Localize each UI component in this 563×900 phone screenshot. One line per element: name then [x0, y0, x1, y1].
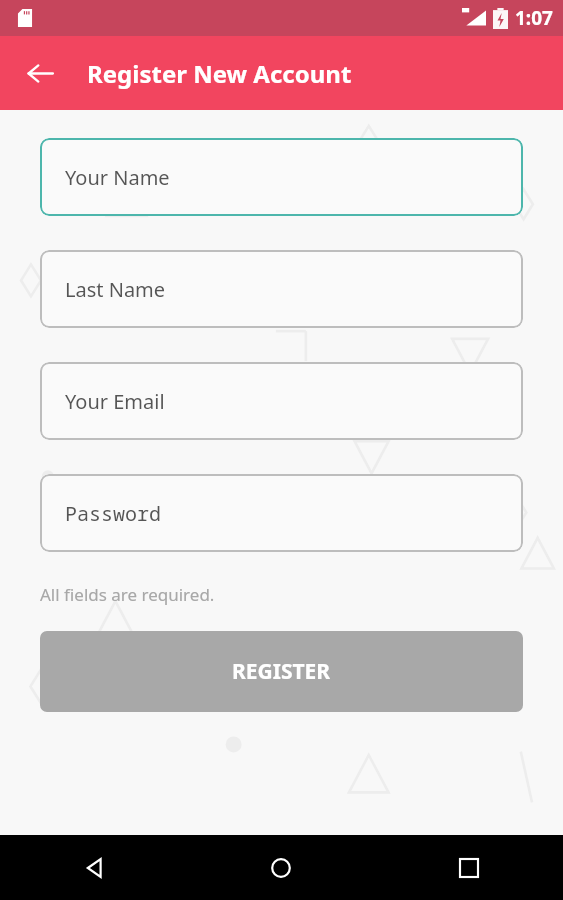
button[interactable]: Your Email — [40, 362, 523, 440]
staticText: Your Name — [65, 164, 170, 191]
button[interactable]: Last Name — [40, 250, 523, 328]
button[interactable]: Home — [187, 835, 375, 900]
button[interactable]: Your Name — [40, 138, 523, 216]
staticText: Register New Account — [87, 57, 352, 90]
button[interactable]: Back — [0, 835, 187, 900]
staticText: Last Name — [65, 276, 166, 303]
staticText: All fields are required. — [40, 583, 215, 606]
staticText: REGISTER — [232, 657, 331, 686]
button[interactable]: Password — [40, 474, 523, 552]
staticText: Password — [65, 500, 161, 527]
staticText: 1:07 — [515, 5, 553, 31]
button[interactable]: REGISTER — [40, 631, 523, 712]
staticText: Your Email — [65, 388, 165, 415]
button[interactable]: Recent apps — [375, 835, 563, 900]
button[interactable]: Back — [12, 45, 68, 101]
